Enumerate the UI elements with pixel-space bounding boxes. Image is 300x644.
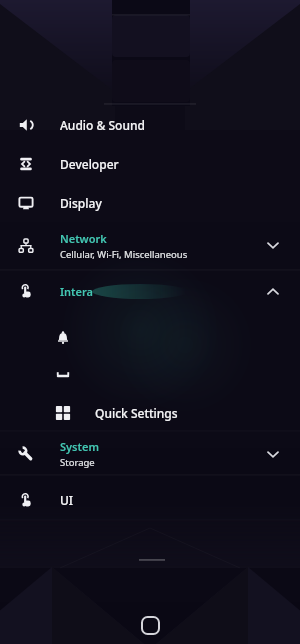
button[interactable]: Developer	[0, 144, 300, 183]
staticText: UI	[60, 492, 74, 508]
button[interactable]: Audio & Sound	[0, 105, 300, 144]
button[interactable]	[0, 356, 300, 394]
staticText: Developer	[60, 156, 119, 172]
button[interactable]	[137, 612, 164, 639]
staticText: Intera	[60, 284, 93, 299]
button[interactable]: System	[0, 431, 300, 477]
button[interactable]: Network	[0, 222, 300, 269]
button[interactable]: Quick Settings	[0, 394, 300, 432]
staticText: Audio & Sound	[60, 117, 145, 133]
button[interactable]: Intera	[0, 269, 300, 313]
staticText: Storage	[60, 456, 95, 469]
staticText: System	[60, 439, 99, 454]
button[interactable]: Display	[0, 183, 300, 222]
staticText: Display	[60, 195, 102, 211]
button[interactable]	[0, 319, 300, 357]
button[interactable]: UI	[0, 478, 300, 521]
staticText: Quick Settings	[95, 405, 178, 421]
staticText: Cellular, Wi-Fi, Miscellaneous	[60, 248, 188, 261]
staticText: Network	[60, 231, 107, 246]
